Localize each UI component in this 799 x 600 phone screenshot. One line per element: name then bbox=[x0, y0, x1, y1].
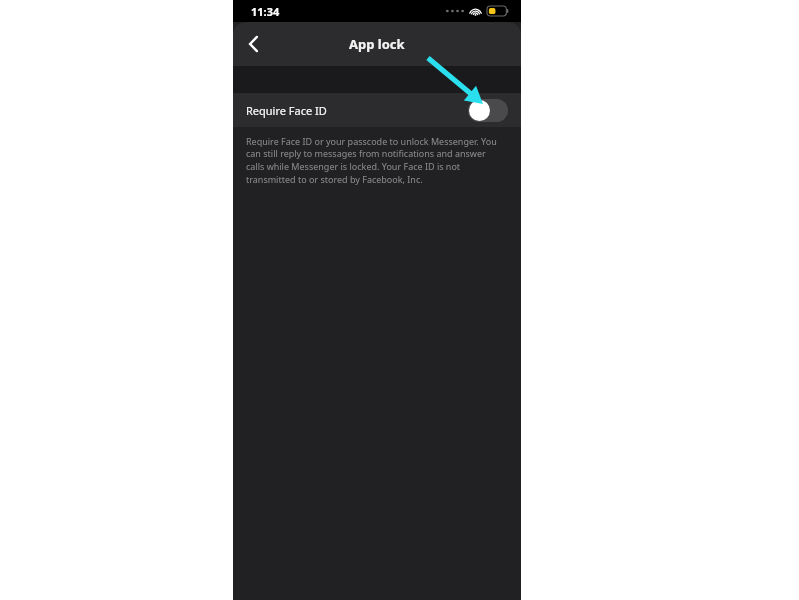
staticText: Require Face ID or your passcode to unlo… bbox=[246, 135, 503, 186]
staticText: 11:34 bbox=[251, 4, 280, 19]
button[interactable]: Back bbox=[233, 24, 273, 64]
staticText: App lock bbox=[349, 35, 405, 53]
button[interactable]: Require Face ID bbox=[233, 93, 521, 127]
staticText: Require Face ID bbox=[246, 103, 468, 118]
